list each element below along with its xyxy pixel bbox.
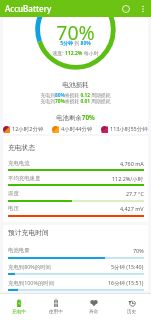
staticText: 112.2%/小时 [112,175,144,182]
staticText: 充电到70%将损耗 0.01 周期损耗 [0,98,151,105]
staticText: 充电到100%的时间 [8,279,55,286]
button[interactable]: 历史 [113,294,151,320]
staticText: 5分钟 (15:40) [111,263,144,270]
staticText: 预计充电时间 [8,228,49,237]
button[interactable]: Help [117,0,134,17]
staticText: 充电到80%的时间 [8,263,51,270]
button[interactable]: More options [134,0,151,17]
staticText: 电池电量 [8,247,30,254]
staticText: 使用中 [49,309,63,315]
staticText: 电池损耗 [0,81,151,89]
staticText: 113小时55分钟 [110,125,148,133]
staticText: 12小时2分钟 [12,125,44,133]
staticText: 70% [0,19,151,46]
staticText: 4小时44分钟 [61,125,93,133]
staticText: 电池剩余70% [0,113,151,122]
staticText: 充电电流 [8,160,30,167]
staticText: 27.7 °C [126,190,144,197]
staticText: 温度 [8,190,19,197]
button[interactable]: 寿命 [75,294,113,320]
staticText: 寿命 [89,309,99,315]
staticText: 16分钟 (15:51) [108,279,144,286]
staticText: 速度: 112.2% 每小时 [0,50,151,57]
staticText: 充电状态 [8,143,36,152]
staticText: 4,427 mV [120,205,144,212]
staticText: 70% [133,247,144,254]
staticText: 平均充电速度 [8,175,41,182]
staticText: 5分钟 到 80% [0,40,151,47]
staticText: 4,760 mA [120,160,144,167]
staticText: 充电中 [12,309,26,315]
staticText: 充电到80%将损耗 0.12 周期损耗 [0,92,151,99]
button[interactable]: 充电中 [0,294,37,320]
staticText: 历史 [127,309,137,315]
button[interactable]: 使用中 [37,294,75,320]
staticText: AccuBattery [5,3,52,14]
staticText: 电压 [8,205,19,212]
